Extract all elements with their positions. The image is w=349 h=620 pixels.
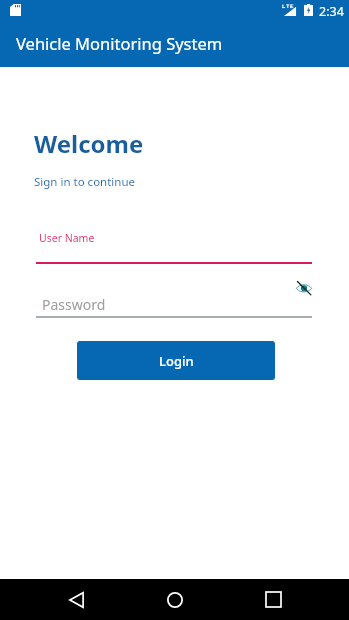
button[interactable]: Recents — [249, 579, 297, 620]
button[interactable]: Home — [151, 579, 199, 620]
staticText: Vehicle Monitoring System — [16, 32, 223, 54]
button[interactable]: Toggle password visibility — [288, 272, 320, 304]
button[interactable]: Back — [52, 579, 100, 620]
staticText: Password — [42, 295, 106, 314]
staticText: Login — [159, 352, 194, 370]
staticText: 2:34 — [319, 3, 344, 20]
staticText: Welcome — [34, 127, 144, 160]
button[interactable]: Login — [77, 341, 275, 380]
staticText: Sign in to continue — [34, 174, 136, 190]
staticText: User Name — [39, 231, 95, 245]
